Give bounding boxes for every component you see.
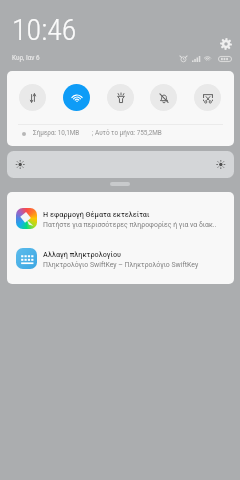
- button[interactable]: Silent: [150, 84, 177, 111]
- button[interactable]: Wi-Fi: [63, 84, 90, 111]
- button[interactable]: Settings: [220, 38, 232, 49]
- staticText: Πατήστε για περισσότερες πληροφορίες ή γ…: [43, 221, 233, 229]
- staticText: Η εφαρμογή Θέματα εκτελείται: [43, 210, 233, 219]
- button[interactable]: Brightness: [7, 151, 234, 178]
- staticText: Κυρ, Ιαν 6: [12, 54, 40, 62]
- staticText: Αλλαγή πληκτρολογίου: [43, 250, 233, 259]
- button[interactable]: Η εφαρμογή Θέματα εκτελείται: [7, 208, 234, 244]
- button[interactable]: Flashlight: [107, 84, 134, 111]
- staticText: Πληκτρολόγιο SwiftKey – Πληκτρολόγιο Swi…: [43, 261, 233, 269]
- staticText: 10:46: [12, 12, 77, 47]
- button[interactable]: Mobile data: [19, 84, 46, 111]
- button[interactable]: Αλλαγή πληκτρολογίου: [7, 248, 234, 284]
- staticText: ;: [92, 129, 94, 137]
- button[interactable]: Screenshot: [194, 84, 221, 111]
- staticText: Αυτό το μήνα: 755,2MB: [95, 129, 162, 137]
- staticText: Σήμερα: 10,1MB: [33, 129, 80, 137]
